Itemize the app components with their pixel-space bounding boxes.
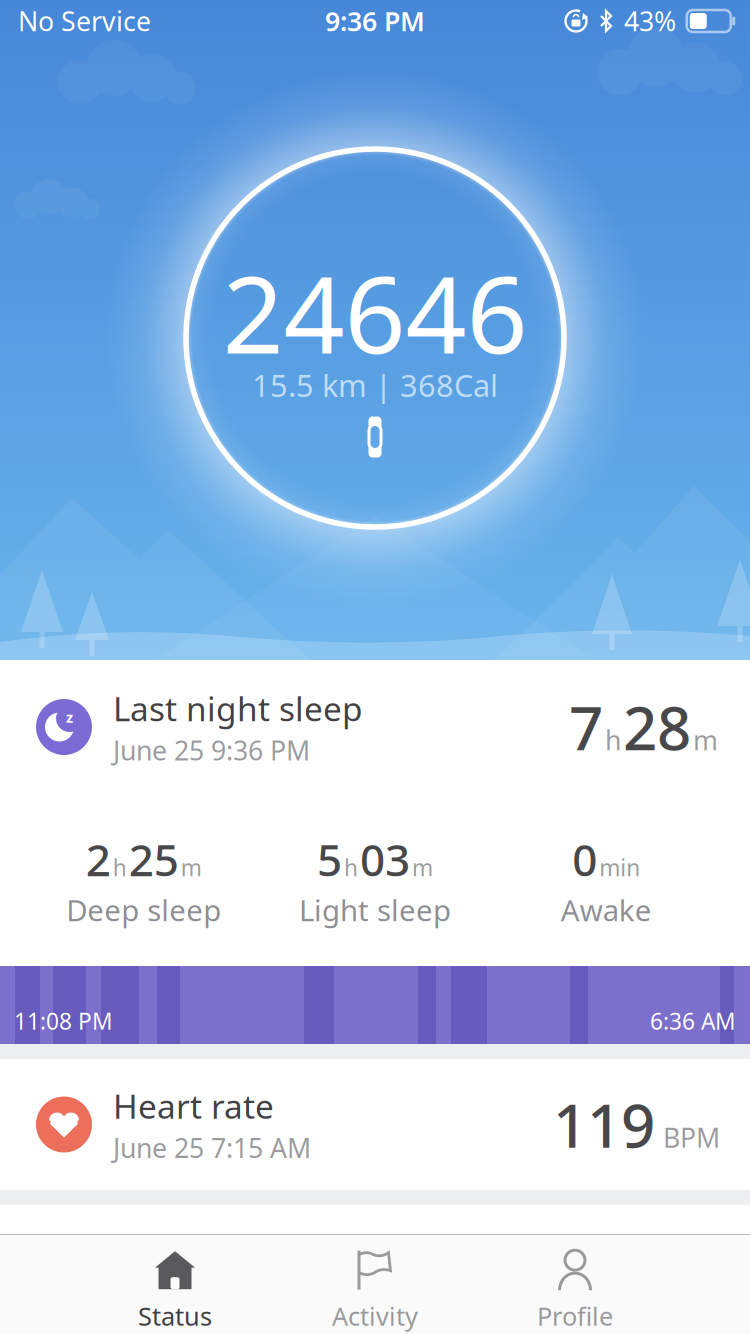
- staticText: Activity: [332, 1299, 418, 1333]
- staticText: BPM: [663, 1120, 720, 1155]
- staticText: 2: [86, 830, 111, 888]
- staticText: 15.5 km | 368Cal: [252, 365, 498, 405]
- button[interactable]: Activity: [275, 1235, 475, 1334]
- staticText: Profile: [537, 1299, 613, 1333]
- staticText: h: [113, 852, 127, 882]
- staticText: m: [181, 852, 202, 882]
- staticText: Awake: [561, 890, 652, 929]
- staticText: June 25 7:15 AM: [113, 1130, 311, 1165]
- staticText: June 25 9:36 PM: [113, 732, 310, 768]
- staticText: h: [605, 722, 621, 758]
- staticText: 25: [129, 830, 179, 888]
- button[interactable]: z: [0, 660, 750, 794]
- staticText: min: [599, 852, 640, 882]
- staticText: Heart rate: [113, 1084, 274, 1128]
- staticText: 0: [572, 830, 597, 888]
- staticText: Last night sleep: [113, 686, 363, 730]
- staticText: Status: [138, 1299, 212, 1333]
- staticText: m: [693, 722, 718, 758]
- staticText: 9:36 PM: [325, 3, 425, 39]
- staticText: z: [66, 707, 73, 727]
- staticText: m: [412, 852, 433, 882]
- staticText: 7: [569, 687, 603, 767]
- button[interactable]: Profile: [475, 1235, 675, 1334]
- button[interactable]: Heart rate: [0, 1059, 750, 1190]
- staticText: 24646: [222, 241, 527, 383]
- staticText: 03: [360, 830, 410, 888]
- staticText: Deep sleep: [66, 890, 221, 929]
- staticText: 11:08 PM: [14, 1006, 113, 1036]
- staticText: 5: [317, 830, 342, 888]
- staticText: h: [344, 852, 358, 882]
- staticText: 43%: [624, 3, 676, 39]
- staticText: 28: [623, 687, 691, 767]
- button[interactable]: Status: [75, 1235, 275, 1334]
- staticText: No Service: [18, 3, 151, 39]
- staticText: 119: [553, 1085, 655, 1164]
- staticText: 6:36 AM: [650, 1006, 736, 1036]
- staticText: Light sleep: [299, 890, 451, 929]
